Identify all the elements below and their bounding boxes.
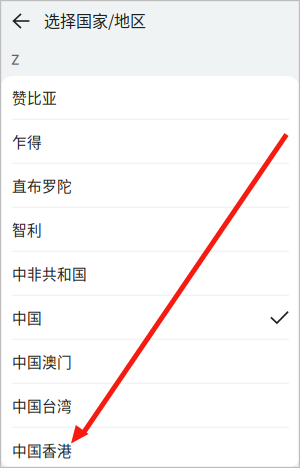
button[interactable]: 赞比亚	[0, 76, 300, 120]
button[interactable]: 中国	[0, 296, 300, 340]
staticText: 直布罗陀	[12, 175, 72, 196]
button[interactable]: Back	[0, 0, 43, 42]
button[interactable]: 中国台湾	[0, 384, 300, 428]
staticText: 智利	[12, 219, 42, 240]
staticText: 乍得	[12, 131, 42, 152]
button[interactable]: 智利	[0, 208, 300, 252]
staticText: 中国	[12, 307, 42, 328]
staticText: 中国香港	[12, 439, 72, 461]
staticText: Z	[11, 52, 20, 68]
staticText: 赞比亚	[12, 87, 57, 108]
button[interactable]: 直布罗陀	[0, 164, 300, 208]
staticText: 中国台湾	[12, 395, 72, 416]
button[interactable]: 中非共和国	[0, 252, 300, 296]
button[interactable]: 乍得	[0, 120, 300, 164]
staticText: 选择国家/地区	[44, 8, 146, 32]
staticText: 中国澳门	[12, 351, 72, 372]
button[interactable]: 中国香港	[0, 428, 300, 468]
staticText: 中非共和国	[12, 263, 87, 284]
button[interactable]: 中国澳门	[0, 340, 300, 384]
